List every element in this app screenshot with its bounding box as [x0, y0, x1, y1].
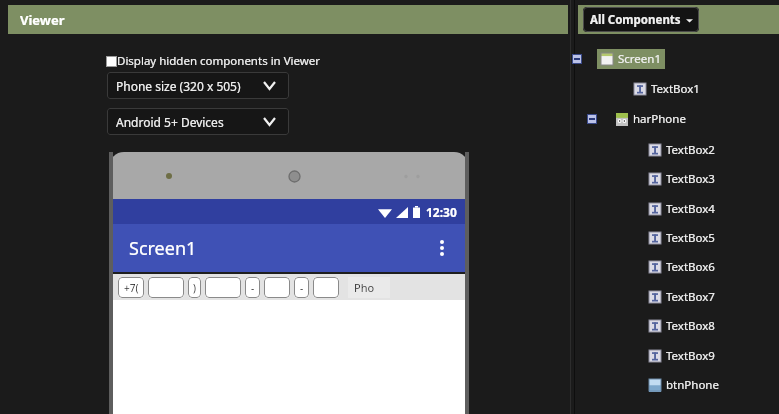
staticText: TextBox9 [666, 348, 715, 364]
staticText: TextBox5 [666, 230, 715, 246]
button[interactable]: TextBox9 [648, 348, 715, 364]
button[interactable]: Display hidden components in Viewer [106, 53, 321, 69]
button[interactable]: ) [188, 277, 201, 298]
button[interactable]: - [294, 277, 309, 298]
staticText: TextBox2 [666, 142, 715, 158]
button[interactable]: TextBox8 [648, 318, 715, 334]
staticText: Android 5+ Devices [116, 114, 224, 130]
button[interactable]: TextBox2 [648, 142, 715, 158]
button[interactable]: +7( [118, 277, 144, 298]
button[interactable]: TextBox4 [648, 201, 715, 217]
button[interactable]: TextBox6 [648, 259, 715, 275]
button[interactable]: More options [428, 234, 456, 262]
staticText: Screen1 [618, 51, 662, 67]
staticText: TextBox3 [666, 171, 715, 187]
button[interactable]: All Components [583, 7, 699, 32]
button[interactable]: harPhone [615, 111, 686, 127]
button[interactable] [264, 277, 290, 298]
staticText: Phone size (320 x 505) [116, 78, 241, 94]
staticText: Pho [354, 280, 375, 295]
staticText: TextBox1 [651, 81, 700, 97]
staticText: TextBox8 [666, 318, 715, 334]
button[interactable]: Android 5+ Devices [107, 108, 289, 135]
staticText: TextBox6 [666, 259, 715, 275]
button[interactable] [148, 277, 184, 298]
staticText: Screen1 [129, 236, 197, 261]
staticText: TextBox7 [666, 289, 715, 305]
button[interactable]: TextBox3 [648, 171, 715, 187]
staticText: ) [193, 281, 196, 295]
staticText: TextBox4 [666, 201, 715, 217]
button[interactable] [313, 277, 339, 298]
staticText: +7( [124, 281, 139, 295]
staticText: btnPhone [666, 377, 719, 393]
staticText: - [300, 281, 304, 295]
staticText: All Components [590, 12, 681, 28]
staticText: Display hidden components in Viewer [117, 53, 321, 69]
button[interactable]: btnPhone [648, 377, 719, 393]
button[interactable]: Collapse harPhone [587, 114, 597, 124]
button[interactable]: Pho [348, 277, 390, 298]
button[interactable]: - [245, 277, 260, 298]
staticText: harPhone [633, 111, 686, 127]
staticText: Viewer [20, 11, 65, 29]
button[interactable]: Screen1 [600, 51, 662, 67]
button[interactable]: Phone size (320 x 505) [107, 72, 289, 99]
button[interactable]: TextBox7 [648, 289, 715, 305]
staticText: - [251, 281, 255, 295]
button[interactable]: TextBox1 [633, 81, 700, 97]
button[interactable]: TextBox5 [648, 230, 715, 246]
button[interactable]: Collapse Screen1 [572, 54, 582, 64]
staticText: 12:30 [426, 204, 457, 220]
button[interactable] [205, 277, 241, 298]
